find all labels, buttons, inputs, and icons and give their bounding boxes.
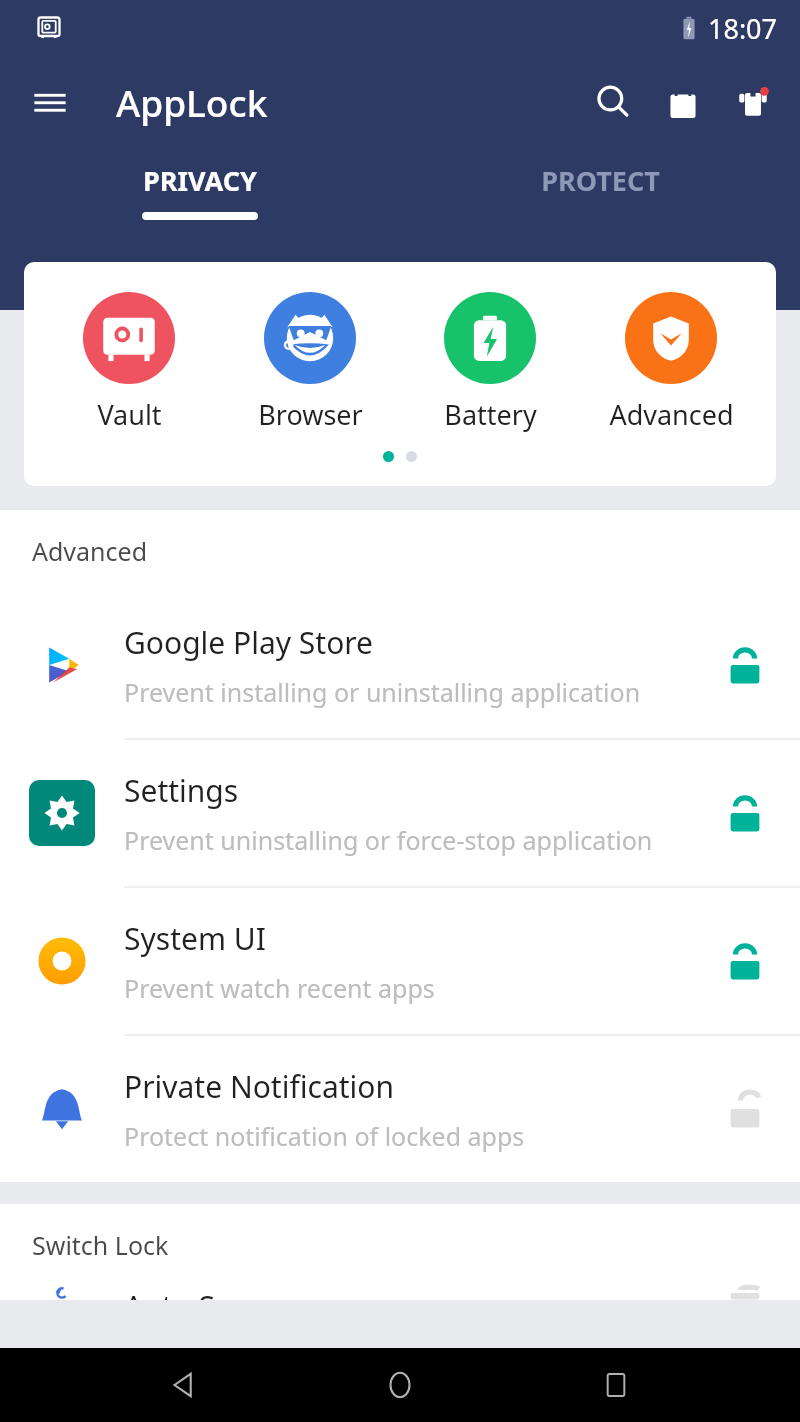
staticText: Auto Sync <box>124 1286 264 1300</box>
staticText: Settings <box>124 770 239 811</box>
button[interactable]: Search <box>584 73 642 131</box>
staticText: 18:07 <box>708 10 778 47</box>
button[interactable]: Browser <box>235 290 385 435</box>
staticText: Switch Lock <box>32 1228 169 1262</box>
staticText: Protect notification of locked apps <box>124 1119 525 1153</box>
button[interactable]: Auto Sync <box>0 1286 800 1300</box>
button[interactable]: Store <box>654 73 712 131</box>
button[interactable]: Battery <box>415 290 565 435</box>
staticText: Battery <box>444 396 537 433</box>
button[interactable]: Settings <box>0 740 800 888</box>
staticText: Private Notification <box>124 1066 394 1107</box>
button[interactable]: Recent apps <box>584 1353 648 1417</box>
staticText: Prevent installing or uninstalling appli… <box>124 675 641 709</box>
staticText: PRIVACY <box>143 162 257 199</box>
staticText: Prevent uninstalling or force-stop appli… <box>124 823 653 857</box>
button[interactable]: Vault <box>54 290 204 435</box>
button[interactable]: Google Play Store <box>0 592 800 740</box>
button[interactable]: PRIVACY <box>0 148 400 240</box>
button[interactable]: Open navigation menu <box>22 74 78 130</box>
staticText: Browser <box>258 396 363 433</box>
button[interactable]: Back <box>152 1353 216 1417</box>
button[interactable]: Private Notification <box>0 1036 800 1182</box>
staticText: Prevent watch recent apps <box>124 971 435 1005</box>
button[interactable]: System UI <box>0 888 800 1036</box>
staticText: Vault <box>97 396 162 433</box>
button[interactable]: Themes <box>724 73 782 131</box>
staticText: Advanced <box>32 534 148 568</box>
staticText: Advanced <box>609 396 734 433</box>
button[interactable]: PROTECT <box>400 148 800 240</box>
staticText: AppLock <box>116 77 268 127</box>
staticText: PROTECT <box>541 162 660 199</box>
button[interactable]: Advanced <box>596 290 746 435</box>
staticText: Google Play Store <box>124 622 374 663</box>
staticText: System UI <box>124 918 266 959</box>
button[interactable]: Home <box>368 1353 432 1417</box>
